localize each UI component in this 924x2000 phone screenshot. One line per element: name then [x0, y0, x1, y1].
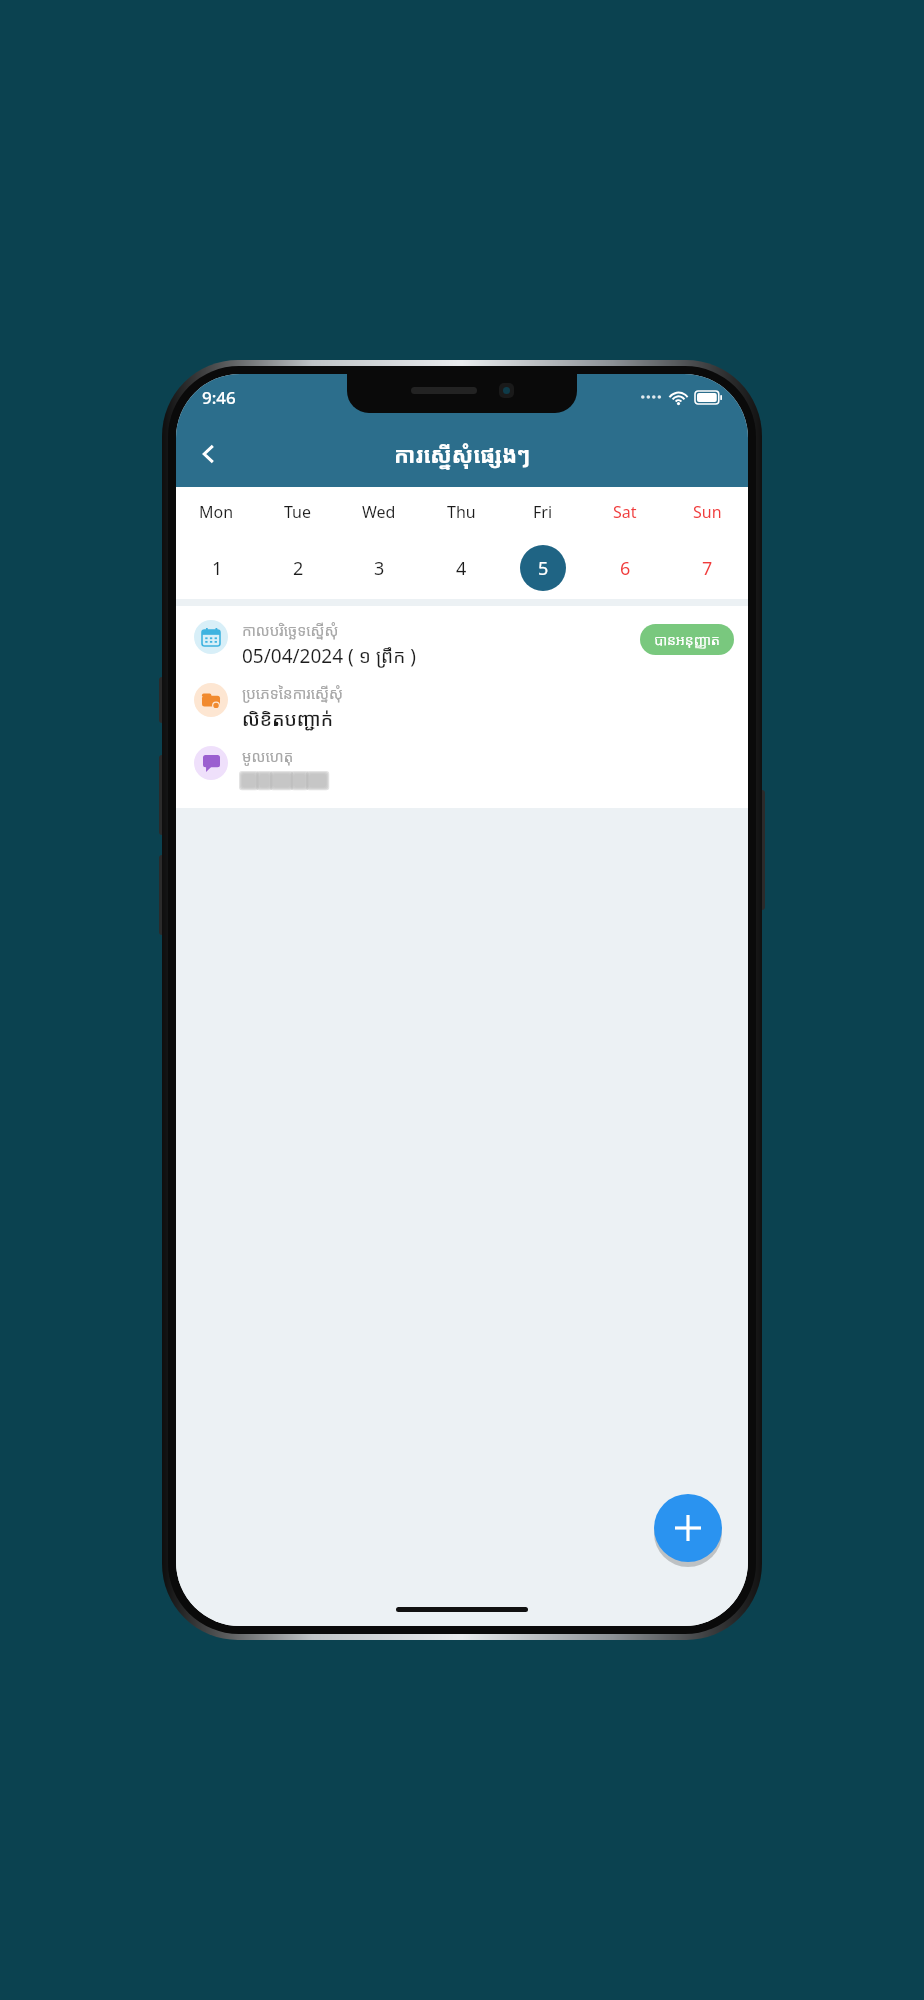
button[interactable]: Add request — [654, 1494, 722, 1562]
button[interactable]: Sat — [584, 487, 666, 537]
staticText: 7 — [702, 556, 713, 581]
staticText: Sat — [613, 501, 637, 523]
staticText: Sun — [693, 501, 722, 523]
staticText: Fri — [533, 501, 553, 523]
staticText: ប្រភេទនៃការស្នើសុំ — [242, 683, 343, 703]
button[interactable]: 6 — [584, 537, 666, 599]
button[interactable]: Thu — [420, 487, 502, 537]
button[interactable]: 3 — [338, 537, 420, 599]
button[interactable]: កាលបរិច្ឆេទស្នើសុំ — [194, 620, 734, 792]
staticText: Wed — [362, 501, 396, 523]
staticText: កាលបរិច្ឆេទស្នើសុំ — [242, 620, 339, 640]
button[interactable]: 1 — [176, 537, 257, 599]
staticText: 05/04/2024 ( ១ ព្រឹក ) — [242, 643, 416, 669]
staticText: 4 — [456, 556, 467, 581]
button[interactable]: 4 — [420, 537, 502, 599]
button[interactable]: Wed — [338, 487, 420, 537]
button[interactable]: 2 — [257, 537, 338, 599]
staticText: 3 — [374, 556, 385, 581]
staticText: 6 — [620, 556, 631, 581]
staticText: 2 — [293, 556, 304, 581]
button[interactable]: Back — [186, 431, 232, 477]
staticText: Mon — [199, 501, 234, 523]
staticText: ការស្នើសុំផ្សេងៗ — [394, 439, 530, 469]
staticText: Tue — [284, 501, 312, 523]
button[interactable]: Tue — [257, 487, 338, 537]
button[interactable]: Mon — [176, 487, 257, 537]
button[interactable]: Fri — [502, 487, 584, 537]
button[interactable]: Sun — [666, 487, 748, 537]
staticText: 1 — [212, 556, 223, 581]
button[interactable]: 7 — [666, 537, 748, 599]
staticText: មូលហេតុ — [242, 746, 294, 766]
staticText: លិខិតបញ្ជាក់ — [242, 706, 334, 732]
staticText: 5 — [538, 556, 549, 581]
staticText: 9:46 — [202, 386, 236, 409]
staticText: Thu — [447, 501, 476, 523]
staticText: បានអនុញ្ញាត — [654, 630, 720, 649]
button[interactable]: បានអនុញ្ញាត — [640, 624, 734, 655]
button[interactable]: 5 — [502, 537, 584, 599]
